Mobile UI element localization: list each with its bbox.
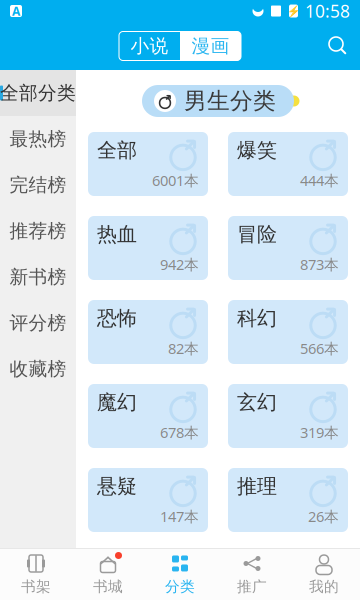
button[interactable]: 全部 — [88, 132, 208, 196]
staticText: 悬疑 — [97, 474, 137, 499]
staticText: 推广 — [237, 577, 267, 595]
staticText: 最热榜 — [9, 127, 66, 150]
button[interactable]: 恐怖 — [88, 300, 208, 364]
staticText: 书架 — [21, 577, 51, 595]
staticText: 10:58 — [305, 0, 350, 22]
button[interactable]: 书城 — [72, 548, 144, 600]
staticText: 热血 — [97, 222, 137, 247]
button[interactable]: 收藏榜 — [0, 346, 76, 392]
button[interactable]: 评分榜 — [0, 300, 76, 346]
staticText: 678本 — [160, 422, 199, 442]
staticText: 男生分类 — [184, 87, 276, 115]
button[interactable]: 冒险 — [228, 216, 348, 280]
button[interactable]: 科幻 — [228, 300, 348, 364]
button[interactable]: 魔幻 — [88, 384, 208, 448]
staticText: 漫画 — [191, 34, 229, 57]
button[interactable]: 搜索 — [316, 24, 360, 68]
button[interactable]: 全部分类 — [0, 70, 76, 116]
button[interactable]: 分类 — [144, 548, 216, 600]
staticText: A — [12, 3, 20, 19]
staticText: 26本 — [308, 506, 339, 526]
button[interactable]: 热血 — [88, 216, 208, 280]
button[interactable]: 推广 — [216, 548, 288, 600]
staticText: 推理 — [237, 474, 277, 499]
button[interactable]: 完结榜 — [0, 162, 76, 208]
button[interactable]: 最热榜 — [0, 116, 76, 162]
staticText: 我的 — [309, 577, 339, 595]
staticText: 新书榜 — [9, 265, 66, 288]
button[interactable]: 悬疑 — [88, 468, 208, 532]
button[interactable]: 漫画 — [180, 31, 241, 60]
button[interactable]: 新书榜 — [0, 254, 76, 300]
staticText: 全部分类 — [0, 81, 76, 104]
staticText: 444本 — [300, 170, 339, 190]
staticText: 魔幻 — [97, 390, 137, 415]
staticText: 小说 — [130, 34, 168, 57]
staticText: 319本 — [300, 422, 339, 442]
staticText: 566本 — [300, 338, 339, 358]
staticText: 推荐榜 — [9, 219, 66, 242]
staticText: 873本 — [300, 254, 339, 274]
staticText: 书城 — [93, 577, 123, 595]
staticText: 评分榜 — [9, 311, 66, 334]
button[interactable]: 玄幻 — [228, 384, 348, 448]
staticText: 完结榜 — [9, 173, 66, 196]
staticText: 科幻 — [237, 306, 277, 331]
staticText: 冒险 — [237, 222, 277, 247]
staticText: 全部 — [97, 138, 137, 163]
staticText: 分类 — [165, 577, 195, 595]
staticText: 爆笑 — [237, 138, 277, 163]
staticText: 942本 — [160, 254, 199, 274]
staticText: 玄幻 — [237, 390, 277, 415]
button[interactable]: 推理 — [228, 468, 348, 532]
staticText: 6001本 — [152, 170, 199, 190]
staticText: 恐怖 — [97, 306, 137, 331]
staticText: 147本 — [160, 506, 199, 526]
staticText: 收藏榜 — [9, 357, 66, 380]
staticText: ⚡ — [287, 5, 300, 17]
button[interactable]: 爆笑 — [228, 132, 348, 196]
button[interactable]: 我的 — [288, 548, 360, 600]
button[interactable]: 推荐榜 — [0, 208, 76, 254]
button[interactable]: 书架 — [0, 548, 72, 600]
button[interactable]: 小说 — [119, 31, 180, 60]
staticText: 82本 — [168, 338, 199, 358]
